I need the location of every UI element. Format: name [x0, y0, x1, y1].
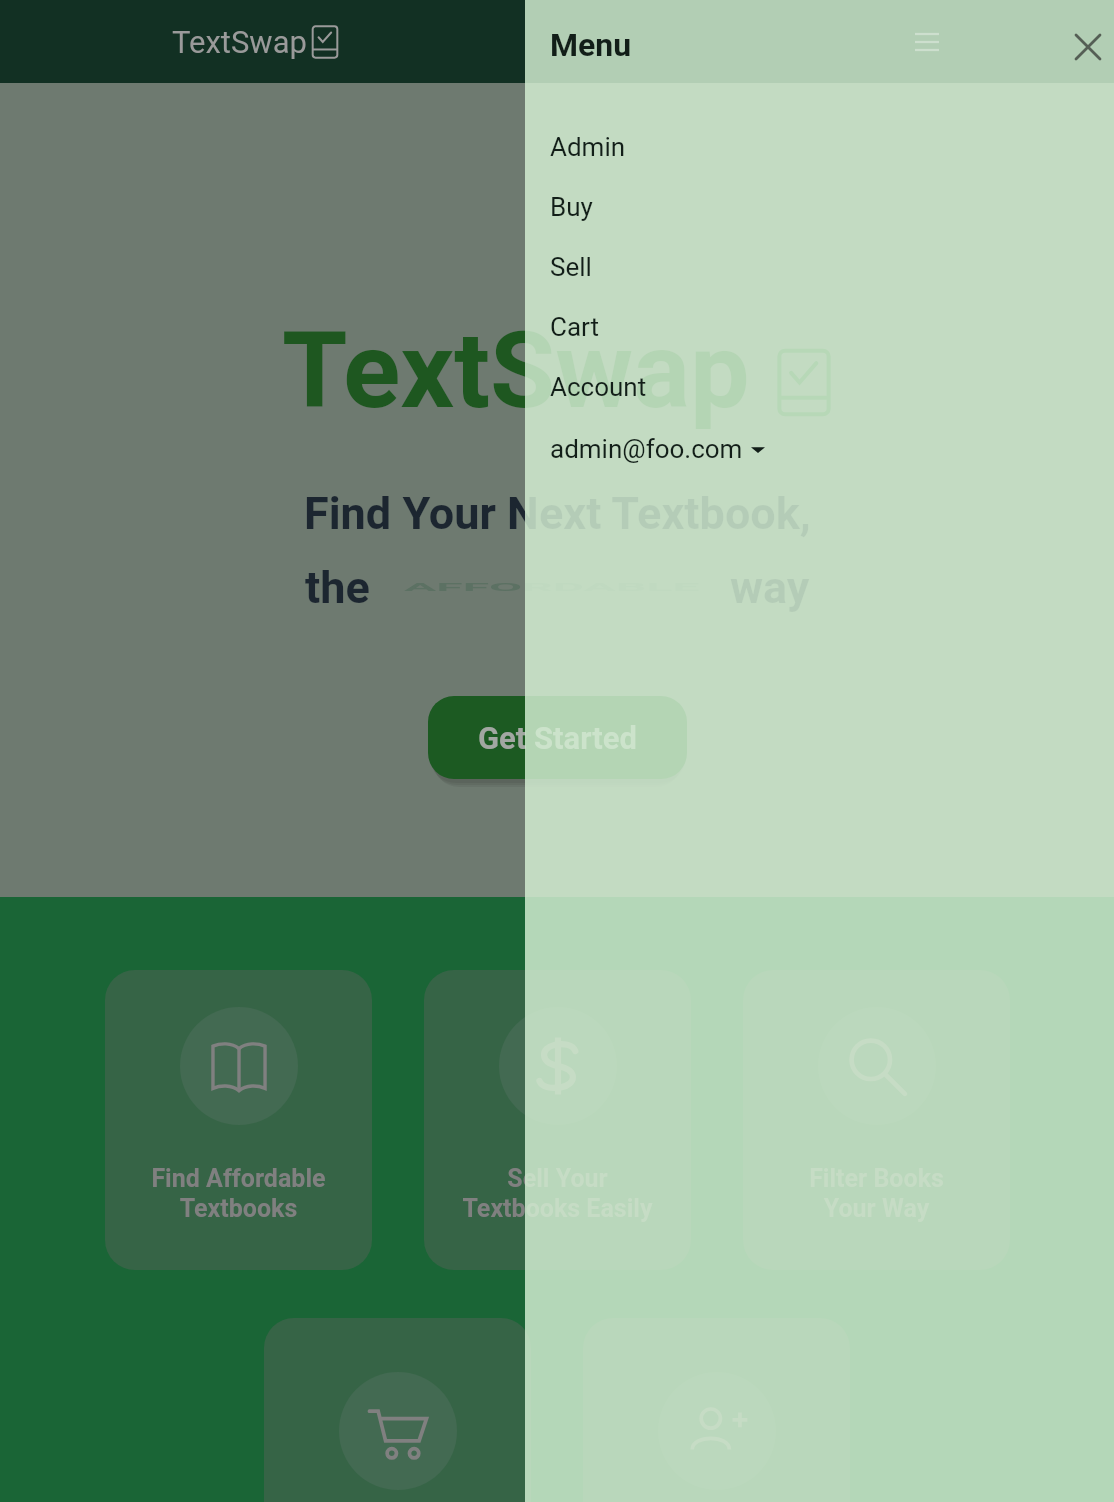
staticText: Find Affordable Textbooks — [151, 1164, 326, 1223]
staticText: Cart — [550, 312, 600, 342]
staticText: TextSwap — [282, 309, 750, 433]
button[interactable]: Open menu — [903, 18, 951, 66]
staticText: Menu — [550, 26, 632, 64]
staticText: way — [730, 561, 810, 614]
staticText: Find Your Next Textbook, — [304, 487, 811, 540]
button[interactable]: Close menu — [1064, 23, 1112, 71]
button[interactable]: Buy — [525, 177, 1114, 237]
staticText: admin@foo.com — [550, 434, 743, 464]
button[interactable]: Easy and Secure Checkout — [264, 1318, 531, 1502]
button[interactable]: Sell Your Textbooks Easily — [424, 970, 691, 1270]
staticText: Buy — [550, 192, 593, 222]
staticText: Admin — [550, 132, 626, 162]
button[interactable]: Cart — [525, 297, 1114, 357]
button[interactable]: Account — [525, 357, 1114, 417]
staticText: AFFORDABLE — [404, 580, 700, 594]
button[interactable]: Admin — [525, 117, 1114, 177]
button[interactable]: admin@foo.com — [525, 417, 1114, 481]
staticText: Filter Books Your Way — [809, 1164, 944, 1223]
button[interactable]: Get Started — [428, 696, 687, 779]
staticText: Sell Your Textbooks Easily — [462, 1164, 653, 1223]
button[interactable]: Sell — [525, 237, 1114, 297]
staticText: Get Started — [478, 720, 638, 756]
staticText: TextSwap — [172, 24, 307, 60]
staticText: Account — [550, 372, 647, 402]
staticText: the — [305, 561, 370, 614]
button[interactable]: TextSwap — [172, 24, 339, 60]
staticText: Sell — [550, 252, 592, 282]
button[interactable]: Find Affordable Textbooks — [105, 970, 372, 1270]
